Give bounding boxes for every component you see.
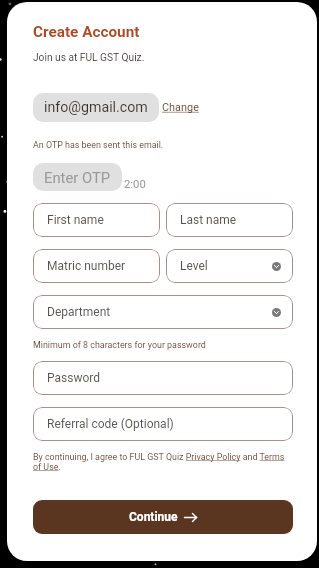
staticText: Create Account: [33, 23, 140, 41]
button[interactable]: Last name: [166, 203, 293, 237]
button[interactable]: Enter OTP: [33, 163, 122, 191]
button[interactable]: Change: [162, 101, 199, 114]
staticText: Password: [47, 371, 101, 385]
button[interactable]: Department: [33, 295, 293, 329]
other: Expand: [272, 308, 281, 317]
staticText: Referral code (Optional): [47, 417, 174, 431]
staticText: Change: [162, 101, 199, 114]
staticText: 2:00: [124, 178, 146, 191]
staticText: Continue: [129, 510, 178, 524]
staticText: info@gmail.com: [44, 99, 148, 116]
staticText: Join us at FUL GST Quiz.: [33, 52, 145, 64]
button[interactable]: First name: [33, 203, 160, 237]
staticText: Level: [180, 259, 208, 273]
staticText: Department: [47, 305, 111, 319]
button[interactable]: Continue: [33, 500, 293, 534]
button[interactable]: Password: [33, 361, 293, 395]
staticText: By continuing, I agree to FUL GST Quiz P…: [33, 452, 293, 472]
staticText: Last name: [180, 213, 237, 227]
staticText: Matric number: [47, 259, 126, 273]
other: Expand: [272, 262, 281, 271]
button[interactable]: info@gmail.com: [33, 93, 159, 122]
staticText: First name: [47, 213, 104, 227]
button[interactable]: Level: [166, 249, 293, 283]
button[interactable]: Matric number: [33, 249, 160, 283]
staticText: An OTP has been sent this email.: [33, 140, 164, 150]
staticText: Enter OTP: [44, 169, 111, 186]
button[interactable]: Referral code (Optional): [33, 407, 293, 441]
staticText: Minimum of 8 characters for your passwor…: [33, 340, 206, 350]
